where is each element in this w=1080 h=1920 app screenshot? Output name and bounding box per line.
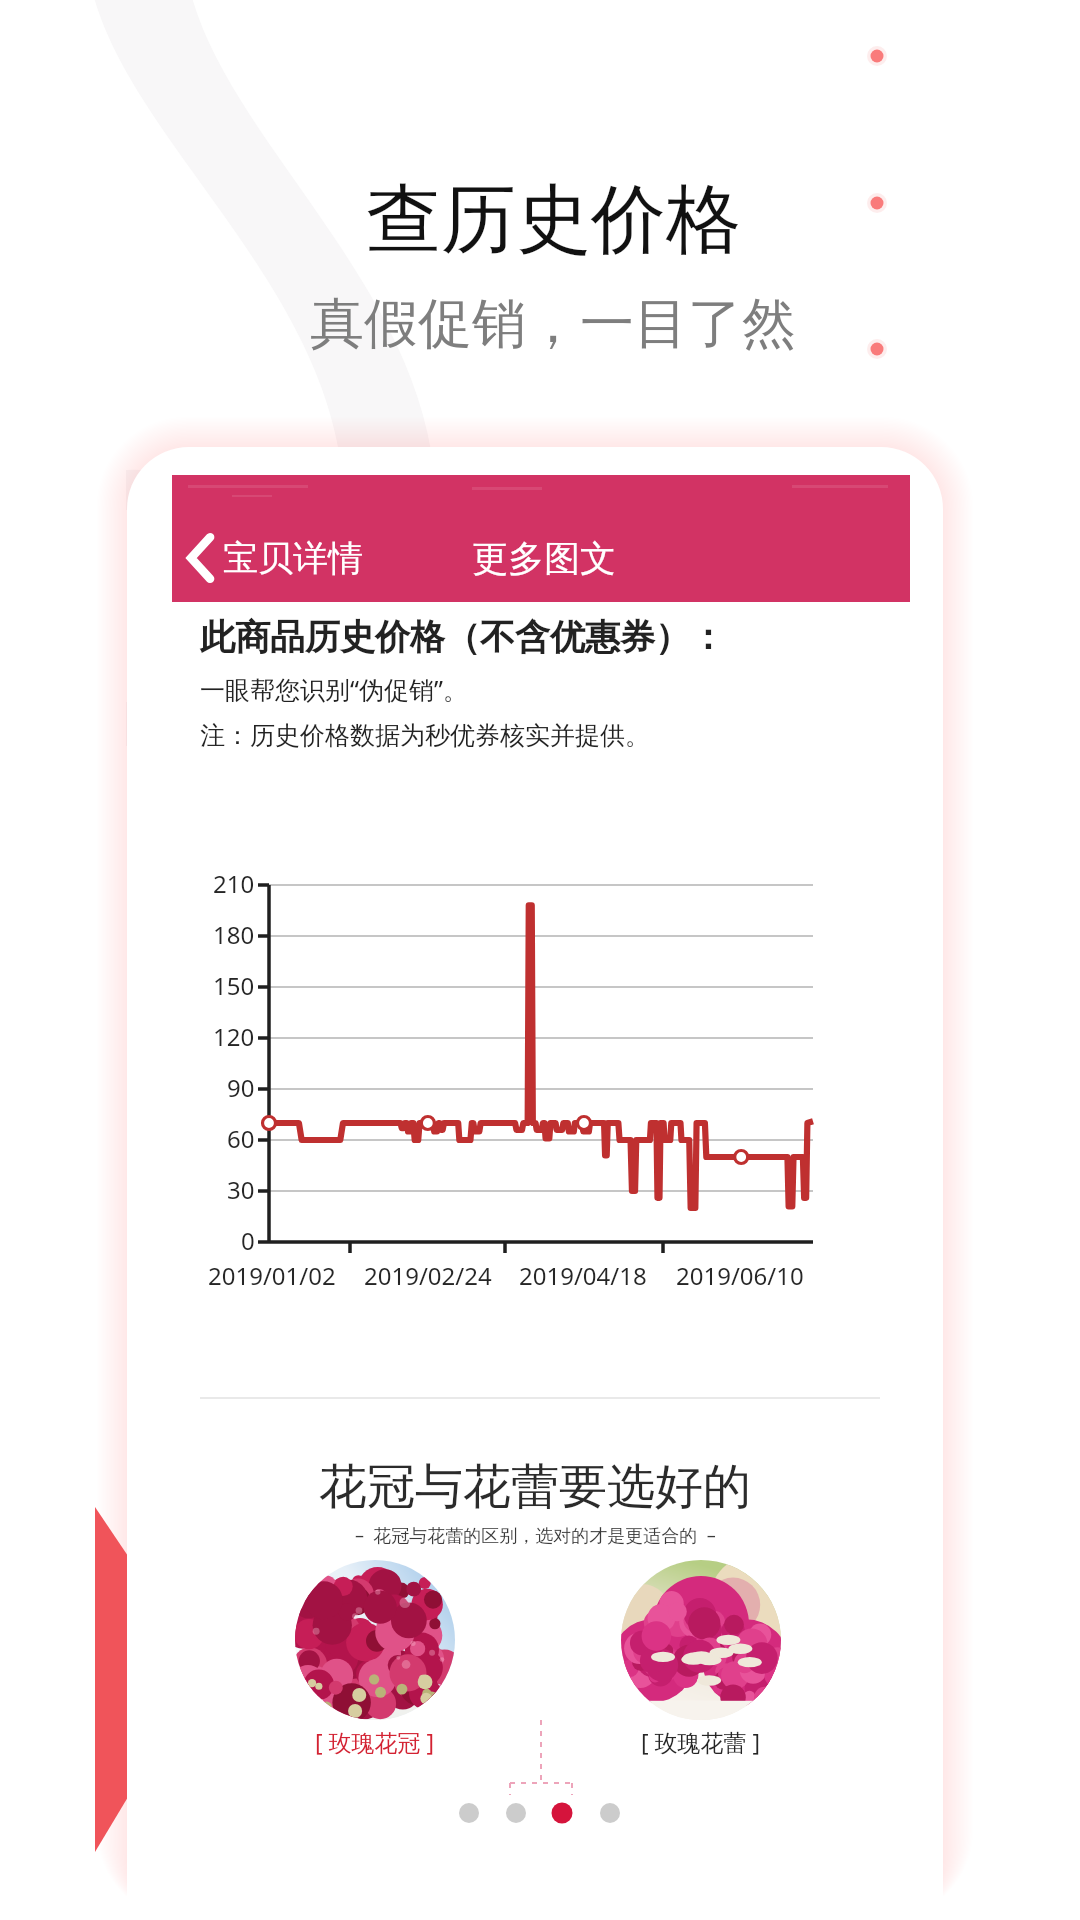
staticText: 一眼帮您识别“伪促销”。 (200, 672, 468, 706)
staticText: 宝贝详情 (223, 536, 363, 580)
staticText: 真假促销，一目了然 (310, 290, 796, 358)
staticText: 查历史价格 (366, 173, 741, 267)
staticText: [ 玫瑰花冠 ] (315, 1726, 435, 1757)
staticText: 180 (213, 918, 255, 951)
staticText: 2019/02/24 (364, 1259, 492, 1292)
other: Back (182, 532, 220, 584)
staticText: 2019/04/18 (519, 1259, 647, 1292)
staticText: 120 (213, 1020, 255, 1053)
staticText: 60 (227, 1122, 255, 1155)
staticText: 30 (227, 1173, 255, 1206)
staticText: 注：历史价格数据为秒优券核实并提供。 (200, 720, 650, 751)
staticText: 2019/06/10 (676, 1259, 804, 1292)
staticText: 90 (227, 1071, 255, 1104)
button[interactable]: 更多图文 (472, 531, 616, 585)
staticText: 此商品历史价格（不含优惠券）： (200, 615, 725, 659)
staticText: 150 (213, 969, 255, 1002)
staticText: 2019/01/02 (208, 1259, 336, 1292)
staticText: 花冠与花蕾要选好的 (319, 1457, 751, 1517)
button[interactable]: Back (182, 531, 363, 585)
staticText: – 花冠与花蕾的区别，选对的才是更适合的 – (355, 1523, 716, 1548)
staticText: 0 (241, 1224, 255, 1257)
staticText: [ 玫瑰花蕾 ] (641, 1726, 761, 1757)
staticText: 210 (213, 867, 255, 900)
staticText: 更多图文 (472, 536, 616, 581)
